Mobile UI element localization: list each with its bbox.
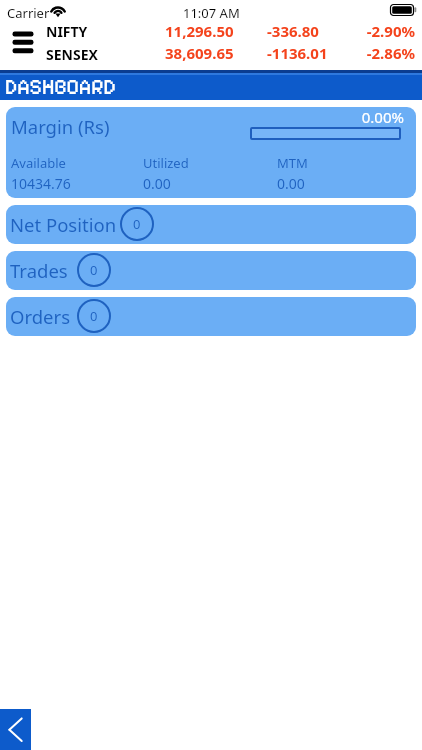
staticText: Carrier <box>7 4 50 22</box>
button[interactable]: Net Position <box>6 205 416 244</box>
staticText: 10434.76 <box>11 174 71 193</box>
staticText: 0.00 <box>143 174 171 193</box>
staticText: 0 <box>133 215 141 233</box>
button[interactable]: Back <box>0 709 31 750</box>
staticText: Margin (Rs) <box>11 114 110 139</box>
staticText: Trades <box>10 258 68 283</box>
staticText: Available <box>11 154 66 172</box>
staticText: 0.00% <box>304 107 404 127</box>
staticText: -2.90% <box>349 21 415 41</box>
staticText: SENSEX <box>46 45 98 64</box>
staticText: Orders <box>10 304 71 329</box>
staticText: 11:07 AM <box>183 4 240 22</box>
button[interactable]: DASHBOARD <box>0 75 422 100</box>
staticText: -2.86% <box>349 43 415 63</box>
staticText: -1136.01 <box>267 43 328 63</box>
staticText: NIFTY <box>46 22 88 41</box>
staticText: 38,609.65 <box>165 43 234 63</box>
button[interactable]: Margin (Rs) <box>6 107 416 198</box>
staticText: -336.80 <box>267 21 319 41</box>
staticText: 0 <box>90 307 98 325</box>
staticText: 0.00 <box>277 174 305 193</box>
staticText: MTM <box>277 154 308 172</box>
staticText: Utilized <box>143 154 189 172</box>
staticText: 11,296.50 <box>165 21 234 41</box>
staticText: DASHBOARD <box>5 75 116 100</box>
staticText: Net Position <box>10 212 117 237</box>
button[interactable]: Menu <box>0 22 46 70</box>
staticText: 0 <box>90 261 98 279</box>
button[interactable]: Trades <box>6 251 416 290</box>
button[interactable]: Orders <box>6 297 416 336</box>
